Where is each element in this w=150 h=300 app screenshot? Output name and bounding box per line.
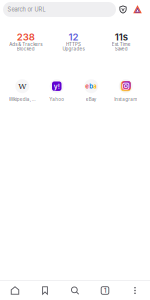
staticText: Upgrades — [62, 46, 84, 52]
button[interactable]: e — [74, 79, 108, 102]
staticText: Search or URL — [7, 6, 45, 13]
button[interactable]: Bookmarks — [30, 281, 60, 300]
staticText: HTTPS — [66, 42, 81, 47]
staticText: Saved — [115, 46, 128, 52]
staticText: Yahoo — [49, 97, 64, 102]
staticText: 238 — [17, 31, 35, 43]
staticText: 11s — [115, 31, 128, 43]
button[interactable]: W — [5, 79, 39, 102]
staticText: Instagram — [114, 97, 137, 102]
button[interactable]: Shields — [116, 2, 130, 17]
staticText: Blocked — [17, 46, 35, 52]
button[interactable]: Search — [60, 281, 90, 300]
staticText: eBay — [86, 97, 97, 102]
staticText: 12 — [68, 31, 78, 43]
staticText: Ads & Trackers — [9, 42, 42, 47]
staticText: Est. Time — [112, 42, 131, 47]
button[interactable]: Brave Rewards — [130, 2, 145, 17]
button[interactable]: Menu — [120, 281, 150, 300]
button[interactable]: y! — [39, 79, 74, 102]
staticText: Wikipedia, … — [9, 97, 36, 102]
staticText: b — [89, 82, 93, 90]
staticText: e — [85, 82, 89, 90]
button[interactable]: Home — [0, 281, 30, 300]
staticText: 1 — [104, 287, 106, 294]
button[interactable]: Tabs — [90, 281, 120, 300]
button[interactable]: Search or URL — [3, 2, 116, 17]
staticText: y! — [54, 82, 60, 90]
button[interactable]: Instagram — [108, 79, 143, 102]
staticText: a — [93, 82, 97, 90]
staticText: W — [18, 81, 26, 91]
